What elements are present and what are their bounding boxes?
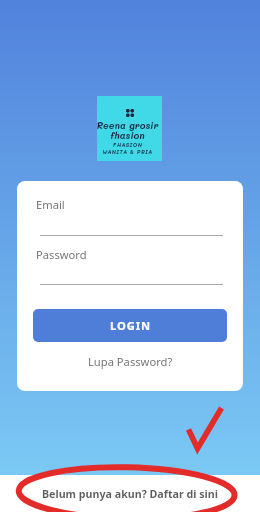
button[interactable]: Lupa Password? [88, 354, 173, 369]
staticText: FHASION WANITA & PRIA [95, 141, 160, 155]
staticText: Email [36, 197, 65, 212]
staticText: Password [36, 247, 87, 262]
button[interactable]: LOGIN [33, 309, 227, 342]
button[interactable]: Email [36, 193, 223, 236]
staticText: Belum punya akun? Daftar di sini [42, 487, 218, 502]
staticText: LOGIN [110, 318, 151, 333]
button[interactable]: Password [36, 243, 223, 286]
button[interactable]: Belum punya akun? Daftar di sini [0, 475, 260, 512]
staticText: Reena grosir fhasion [95, 119, 160, 141]
other: Annotations [0, 0, 260, 512]
